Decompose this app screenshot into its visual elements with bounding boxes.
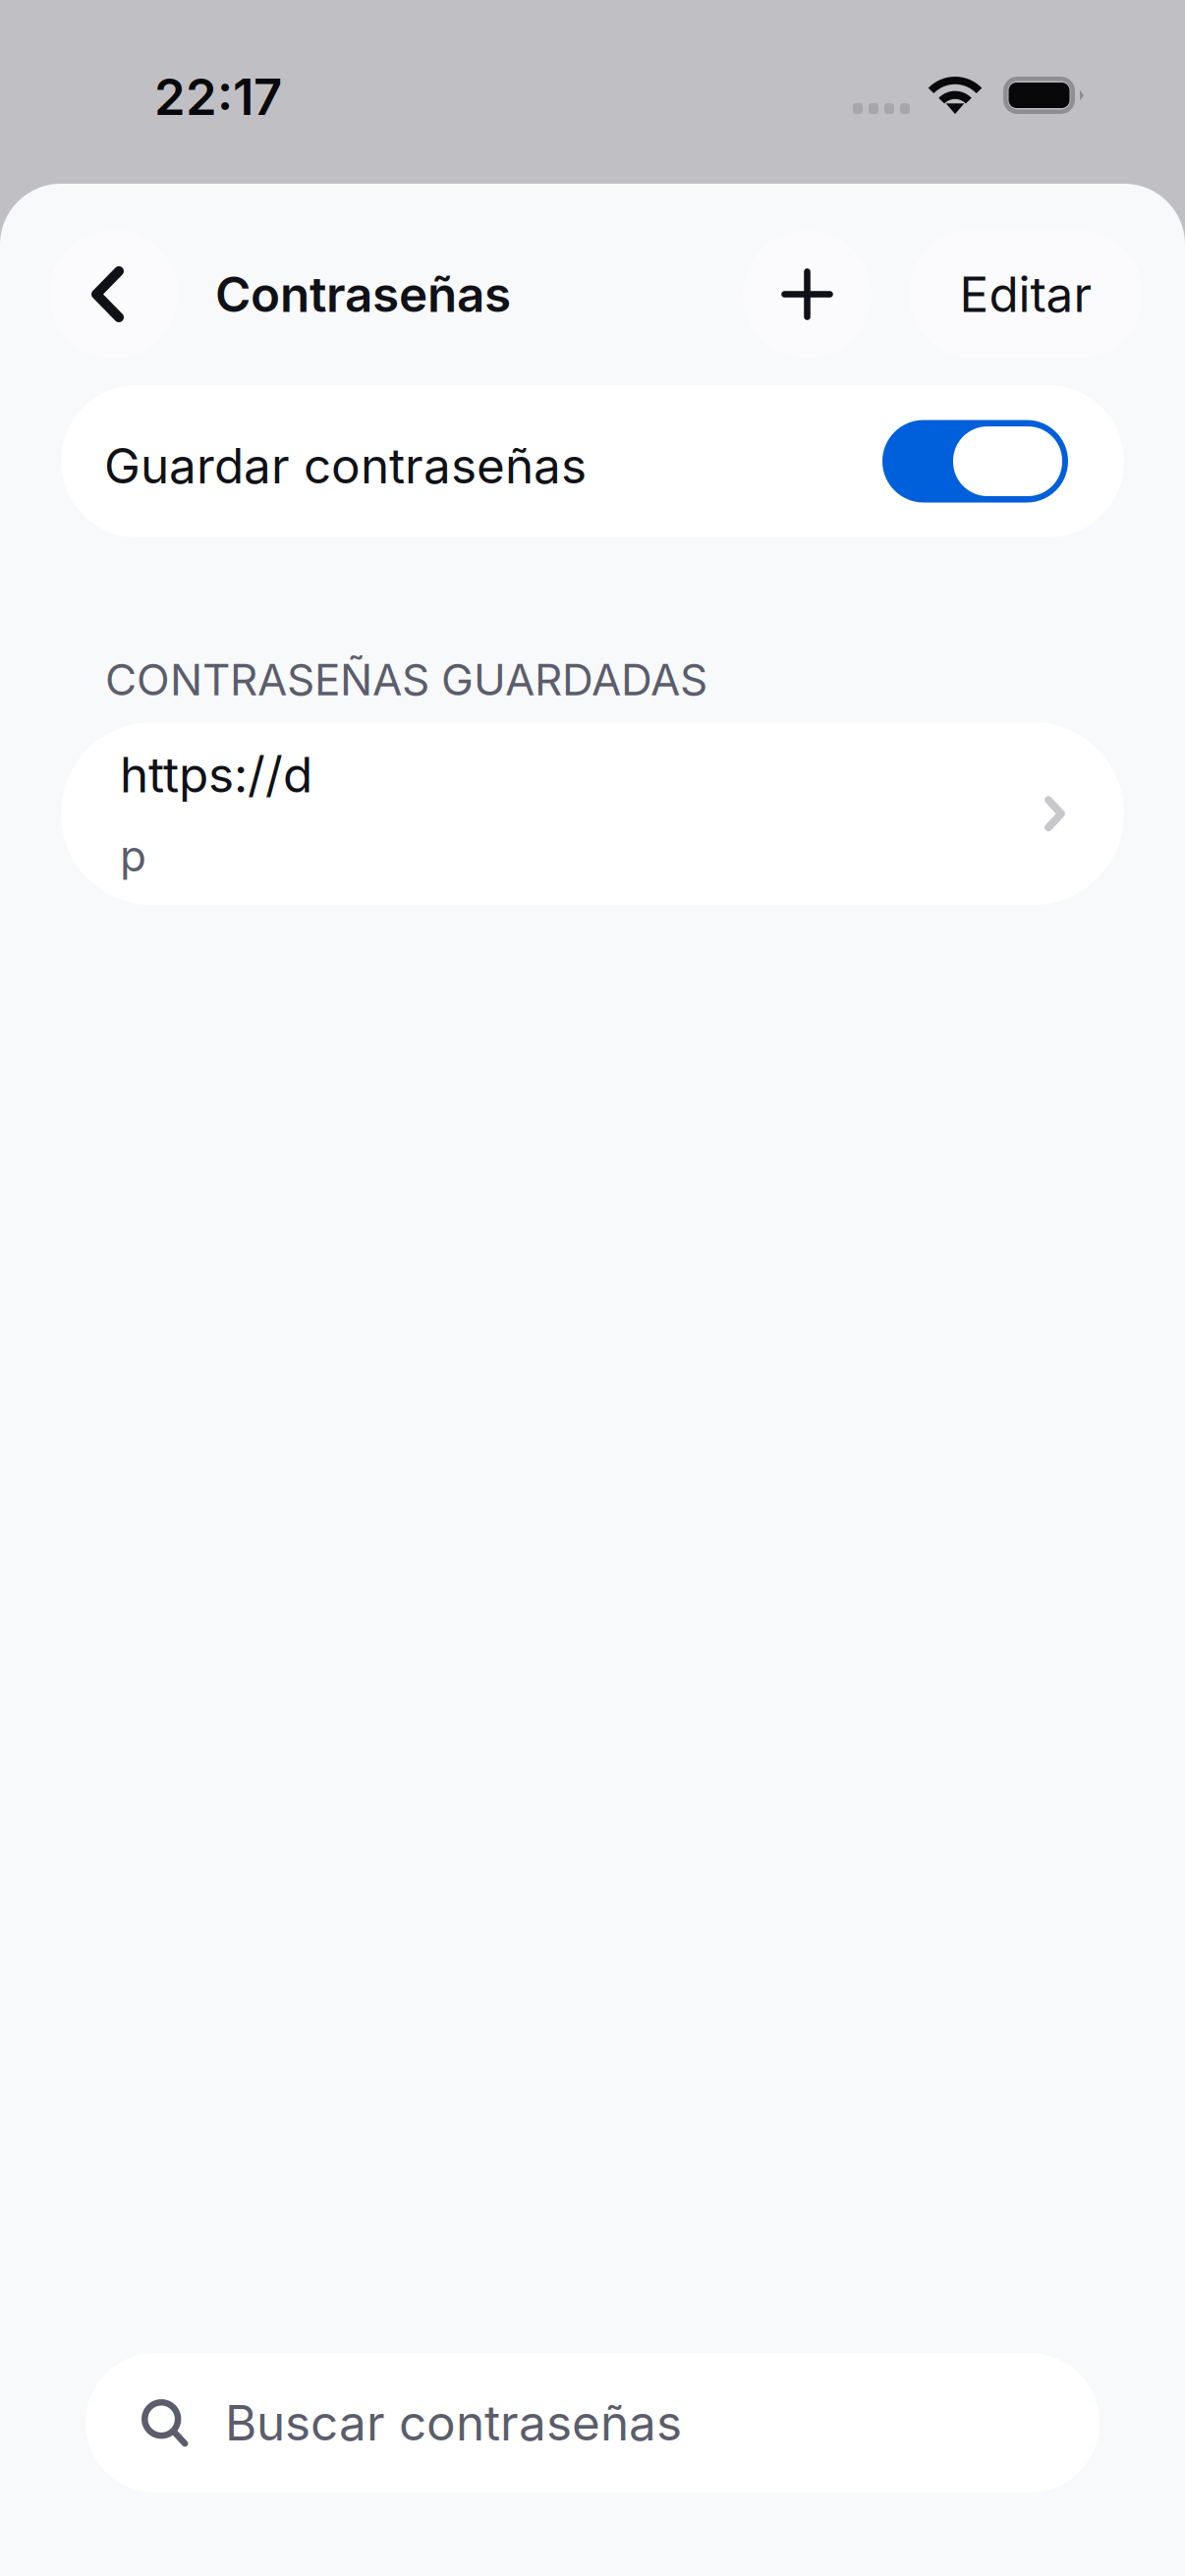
- staticText: Contraseñas: [215, 265, 511, 324]
- button[interactable]: Buscar contraseñas: [85, 2353, 1100, 2492]
- staticText: p: [120, 830, 146, 882]
- button[interactable]: Atrás: [49, 230, 178, 359]
- button[interactable]: https://d: [61, 722, 1124, 905]
- staticText: https://d: [120, 745, 312, 804]
- button[interactable]: Editar: [909, 230, 1143, 359]
- staticText: Editar: [959, 265, 1092, 324]
- staticText: CONTRASEÑAS GUARDADAS: [105, 653, 707, 706]
- button[interactable]: Guardar contraseñas: [61, 385, 1124, 537]
- staticText: Buscar contraseñas: [225, 2393, 682, 2452]
- staticText: 22:17: [154, 67, 282, 127]
- staticText: Guardar contraseñas: [104, 436, 587, 495]
- button[interactable]: Añadir: [743, 230, 872, 359]
